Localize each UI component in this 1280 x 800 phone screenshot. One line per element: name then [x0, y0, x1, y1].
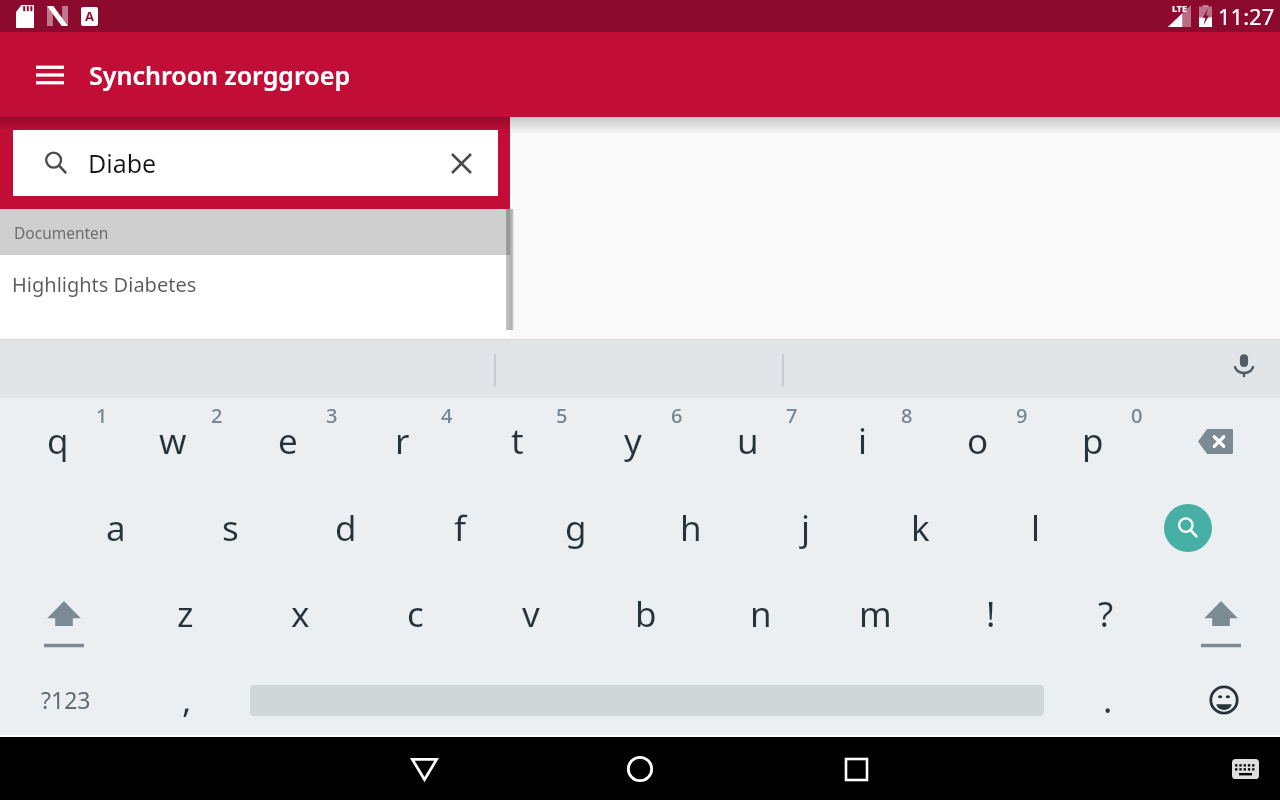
staticText: t — [511, 417, 524, 465]
staticText: r — [395, 417, 410, 465]
button[interactable]: t — [460, 398, 575, 484]
button[interactable]: Back — [364, 738, 484, 800]
button[interactable]: r — [345, 398, 460, 484]
staticText: A — [85, 7, 94, 25]
button[interactable]: i — [805, 398, 920, 484]
button[interactable]: Shift — [1163, 570, 1278, 656]
button[interactable]: ?123 — [0, 656, 128, 735]
staticText: 2 — [211, 402, 223, 429]
button[interactable]: Search — [1093, 484, 1279, 570]
button[interactable]: ! — [933, 570, 1048, 656]
staticText: s — [222, 504, 239, 552]
button[interactable]: Diabe — [13, 130, 498, 196]
staticText: 3 — [326, 402, 338, 429]
staticText: v — [522, 590, 540, 638]
button[interactable]: s — [173, 484, 288, 570]
button[interactable]: b — [588, 570, 703, 656]
button[interactable]: a — [58, 484, 173, 570]
staticText: u — [737, 417, 759, 465]
button[interactable]: Emoji — [1160, 656, 1280, 735]
button[interactable]: u — [690, 398, 805, 484]
staticText: j — [801, 504, 811, 552]
button[interactable]: p — [1035, 398, 1150, 484]
button[interactable]: h — [633, 484, 748, 570]
staticText: c — [407, 590, 424, 638]
button[interactable]: q — [0, 398, 115, 484]
staticText: 5 — [556, 402, 568, 429]
staticText: n — [750, 590, 772, 638]
staticText: 11:27 — [1218, 1, 1275, 31]
staticText: y — [624, 417, 642, 465]
button[interactable]: g — [518, 484, 633, 570]
staticText: g — [565, 504, 587, 552]
button[interactable]: w — [115, 398, 230, 484]
staticText: e — [278, 417, 298, 465]
staticText: ? — [1098, 590, 1114, 638]
button[interactable]: Shift — [0, 570, 128, 656]
staticText: d — [335, 504, 357, 552]
staticText: z — [177, 590, 194, 638]
button[interactable]: v — [473, 570, 588, 656]
staticText: w — [159, 417, 187, 465]
staticText: l — [1031, 504, 1041, 552]
staticText: x — [291, 590, 310, 638]
staticText: 6 — [671, 402, 683, 429]
button[interactable]: n — [703, 570, 818, 656]
staticText: f — [454, 504, 467, 552]
button[interactable]: x — [243, 570, 358, 656]
button[interactable]: Space — [250, 656, 1044, 735]
button[interactable]: Recent apps — [796, 738, 916, 800]
button[interactable]: y — [575, 398, 690, 484]
staticText: 1 — [96, 402, 108, 429]
staticText: m — [859, 590, 892, 638]
button[interactable]: e — [230, 398, 345, 484]
staticText: 0 — [1131, 402, 1143, 429]
staticText: , — [182, 676, 192, 724]
button[interactable]: Highlights Diabetes — [0, 255, 510, 338]
button[interactable]: j — [748, 484, 863, 570]
staticText: Highlights Diabetes — [12, 271, 197, 298]
button[interactable]: ? — [1048, 570, 1163, 656]
staticText: 9 — [1016, 402, 1028, 429]
staticText: b — [635, 590, 657, 638]
button[interactable]: Backspace — [1150, 398, 1278, 484]
staticText: q — [47, 417, 69, 465]
staticText: a — [106, 504, 126, 552]
button[interactable]: , — [128, 656, 243, 735]
staticText: ! — [986, 590, 996, 638]
button[interactable]: Home — [580, 738, 700, 800]
button[interactable]: Switch keyboard — [1210, 738, 1280, 800]
staticText: Documenten — [14, 222, 109, 243]
staticText: 7 — [786, 402, 798, 429]
button[interactable]: Voice input — [1208, 340, 1280, 398]
staticText: 4 — [441, 402, 453, 429]
button[interactable]: o — [920, 398, 1035, 484]
staticText: i — [858, 417, 868, 465]
staticText: ?123 — [41, 684, 91, 715]
staticText: p — [1082, 417, 1104, 465]
button[interactable]: k — [863, 484, 978, 570]
button[interactable]: z — [128, 570, 243, 656]
button[interactable]: c — [358, 570, 473, 656]
button[interactable]: . — [1044, 656, 1160, 735]
staticText: Diabe — [88, 146, 157, 180]
button[interactable]: d — [288, 484, 403, 570]
button[interactable]: f — [403, 484, 518, 570]
button[interactable]: Clear search — [424, 130, 498, 196]
staticText: . — [1103, 676, 1113, 724]
staticText: o — [967, 417, 989, 465]
button[interactable]: m — [818, 570, 933, 656]
staticText: k — [911, 504, 930, 552]
button[interactable]: Open navigation menu — [0, 32, 99, 117]
staticText: Synchroon zorggroep — [89, 58, 351, 92]
staticText: LTE — [1172, 2, 1188, 14]
staticText: 8 — [901, 402, 913, 429]
button[interactable]: l — [978, 484, 1093, 570]
staticText: h — [680, 504, 702, 552]
